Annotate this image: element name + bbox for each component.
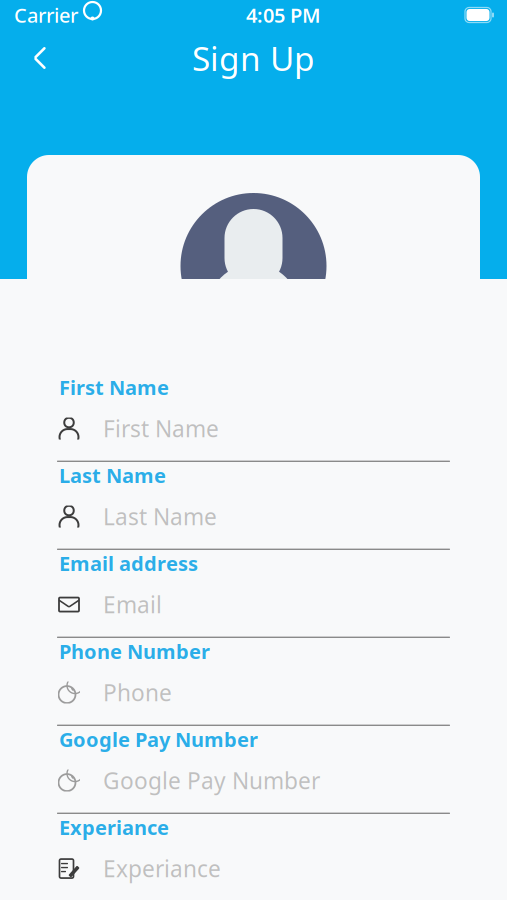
staticText: Google Pay Number — [103, 765, 320, 796]
staticText: Sign Up — [192, 36, 315, 80]
button[interactable]: Phone Number — [57, 638, 450, 726]
staticText: Experiance — [59, 814, 169, 841]
staticText: Google Pay Number — [59, 726, 258, 753]
button[interactable]: Email address — [57, 550, 450, 638]
staticText: Carrier — [14, 2, 78, 28]
staticText: Experiance — [103, 853, 221, 884]
staticText: Last Name — [59, 462, 166, 489]
staticText: Phone Number — [59, 638, 210, 665]
button[interactable]: Back — [18, 36, 62, 80]
staticText: Email address — [59, 550, 198, 577]
button[interactable]: Experiance — [57, 814, 450, 900]
staticText: First Name — [103, 413, 219, 444]
staticText: Last Name — [103, 501, 217, 532]
staticText: Email — [103, 589, 162, 620]
button[interactable]: Google Pay Number — [57, 726, 450, 814]
button[interactable]: Last Name — [57, 462, 450, 550]
button[interactable]: First Name — [57, 374, 450, 462]
staticText: First Name — [59, 374, 169, 401]
staticText: Phone — [103, 677, 172, 708]
staticText: 4:05 PM — [246, 2, 321, 28]
